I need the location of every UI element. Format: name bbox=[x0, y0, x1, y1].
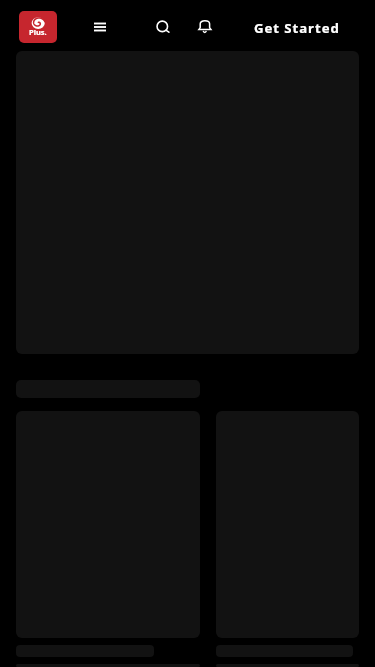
staticText: Get Started bbox=[254, 19, 340, 37]
button[interactable]: Search bbox=[144, 8, 180, 44]
button[interactable]: Menu bbox=[82, 14, 118, 50]
button[interactable]: Get Started bbox=[246, 14, 348, 42]
button[interactable]: Notifications bbox=[187, 8, 223, 44]
button[interactable]: 9GAG Plus home bbox=[19, 11, 57, 43]
staticText: Plus. bbox=[29, 27, 47, 37]
